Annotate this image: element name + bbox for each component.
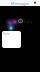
- staticText: Note: [3, 32, 10, 36]
- staticText: Reply: [23, 20, 31, 23]
- button[interactable]: More: [34, 1, 36, 4]
- staticText: Messages: [11, 1, 29, 6]
